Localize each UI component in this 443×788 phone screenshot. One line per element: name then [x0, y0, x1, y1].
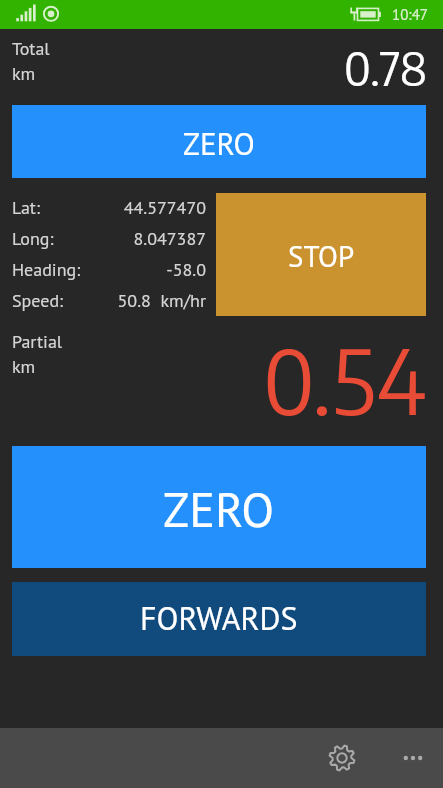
staticText: Heading:: [12, 258, 81, 281]
button[interactable]: ZERO: [12, 446, 426, 568]
button[interactable]: Settings: [320, 736, 364, 780]
staticText: STOP: [288, 237, 355, 275]
staticText: km: [12, 355, 36, 378]
button[interactable]: More options: [391, 736, 435, 780]
staticText: Speed:: [12, 289, 64, 312]
staticText: FORWARDS: [140, 597, 298, 638]
staticText: 50.8 km/hr: [64, 289, 206, 312]
staticText: 44.577470: [40, 196, 206, 219]
staticText: Lat:: [12, 196, 40, 219]
button[interactable]: STOP: [216, 193, 426, 316]
staticText: Partial: [12, 330, 63, 353]
staticText: 10:47: [392, 5, 428, 24]
staticText: 8.047387: [54, 227, 206, 250]
staticText: Long:: [12, 227, 54, 250]
staticText: 0.78: [344, 39, 428, 96]
staticText: km: [12, 62, 36, 85]
staticText: ZERO: [183, 123, 255, 163]
staticText: -58.0: [81, 258, 206, 281]
staticText: Total: [12, 37, 50, 60]
staticText: ZERO: [163, 478, 275, 540]
button[interactable]: ZERO: [12, 105, 426, 178]
staticText: 0.54: [263, 323, 427, 434]
button[interactable]: FORWARDS: [12, 582, 426, 656]
